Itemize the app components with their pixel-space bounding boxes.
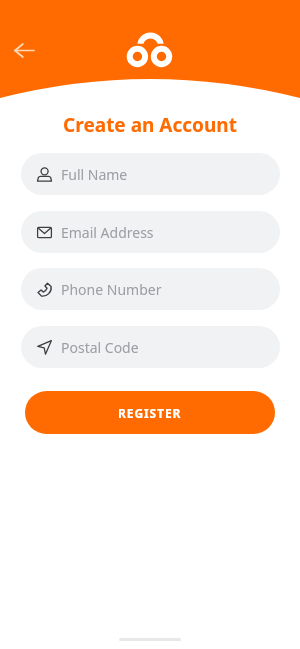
button[interactable]: Back — [8, 34, 40, 66]
button[interactable]: Postal Code — [21, 326, 280, 368]
staticText: Create an Account — [0, 112, 300, 138]
staticText: Phone Number — [61, 280, 162, 299]
button[interactable]: REGISTER — [25, 391, 275, 434]
button[interactable]: Email Address — [21, 211, 280, 253]
staticText: Email Address — [61, 223, 154, 242]
button[interactable]: Full Name — [21, 153, 280, 195]
staticText: REGISTER — [118, 405, 182, 421]
button[interactable]: Phone Number — [21, 268, 280, 310]
staticText: Full Name — [61, 165, 128, 184]
staticText: Postal Code — [61, 338, 139, 357]
